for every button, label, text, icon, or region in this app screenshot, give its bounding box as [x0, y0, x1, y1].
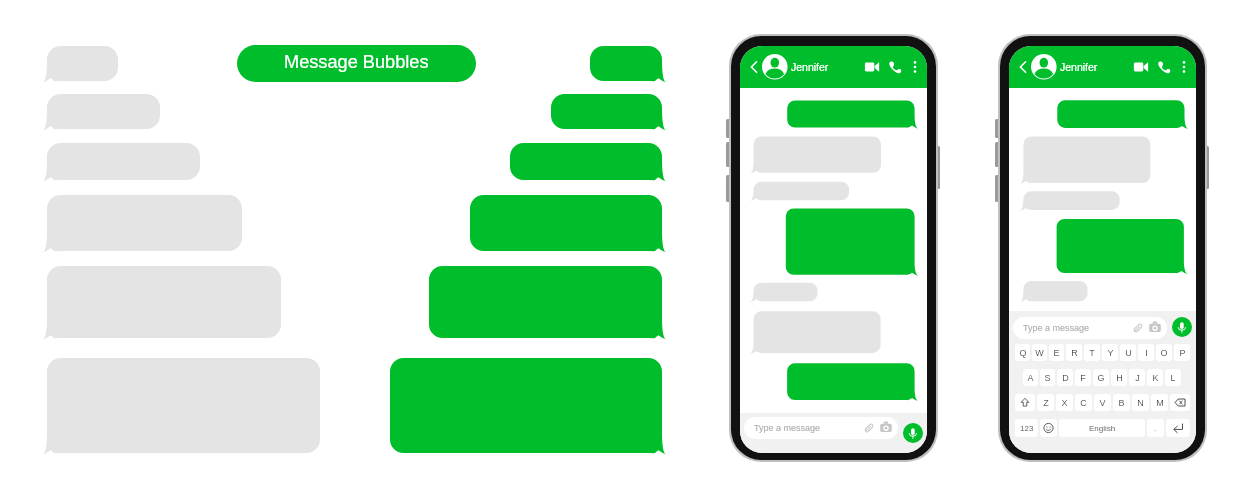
button[interactable]: Back	[1015, 55, 1031, 79]
staticText: M	[1156, 398, 1164, 408]
staticText: Jennifer	[791, 61, 829, 73]
button[interactable]: L	[1165, 369, 1181, 386]
staticText: Type a message	[754, 423, 821, 433]
button[interactable]: Type a message	[1013, 317, 1167, 339]
button[interactable]: More options	[905, 57, 925, 77]
button[interactable]	[1015, 394, 1035, 411]
button[interactable]: Attach file	[862, 421, 876, 435]
button[interactable]: K	[1147, 369, 1163, 386]
staticText: B	[1118, 398, 1125, 408]
button[interactable]: More options	[1174, 57, 1194, 77]
staticText: Y	[1107, 348, 1114, 358]
button[interactable]	[1166, 419, 1190, 437]
button[interactable]: Voice call	[1154, 57, 1174, 77]
staticText: L	[1170, 373, 1176, 383]
button[interactable]: Z	[1037, 394, 1054, 411]
staticText: .	[1154, 424, 1157, 433]
button[interactable]: D	[1057, 369, 1073, 386]
staticText: T	[1089, 348, 1095, 358]
staticText: I	[1145, 348, 1148, 358]
button[interactable]: G	[1093, 369, 1109, 386]
button[interactable]: U	[1120, 344, 1136, 361]
staticText: Message Bubbles	[284, 52, 429, 72]
staticText: K	[1152, 373, 1159, 383]
button[interactable]: M	[1151, 394, 1168, 411]
staticText: P	[1179, 348, 1186, 358]
staticText: V	[1099, 398, 1106, 408]
button[interactable]: J	[1129, 369, 1145, 386]
staticText: J	[1135, 373, 1140, 383]
button[interactable]: T	[1084, 344, 1100, 361]
staticText: W	[1035, 348, 1044, 358]
staticText: U	[1125, 348, 1132, 358]
button[interactable]: X	[1056, 394, 1073, 411]
button[interactable]: Contact avatar	[1031, 54, 1057, 80]
button[interactable]: Voice call	[885, 57, 905, 77]
button[interactable]: Record voice message	[1172, 317, 1192, 337]
staticText: X	[1061, 398, 1068, 408]
button[interactable]: Video call	[1131, 57, 1151, 77]
staticText: Jennifer	[1060, 61, 1098, 73]
button[interactable]	[1170, 394, 1190, 411]
button[interactable]: Camera	[879, 421, 893, 435]
button[interactable]: 123	[1015, 419, 1038, 437]
staticText: Q	[1019, 348, 1027, 358]
staticText: D	[1062, 373, 1069, 383]
button[interactable]: H	[1111, 369, 1127, 386]
button[interactable]: S	[1040, 369, 1055, 386]
button[interactable]: English	[1059, 419, 1145, 437]
staticText: H	[1116, 373, 1123, 383]
button[interactable]: Camera	[1148, 321, 1162, 335]
staticText: O	[1160, 348, 1168, 358]
staticText: G	[1097, 373, 1105, 383]
button[interactable]: P	[1174, 344, 1190, 361]
button[interactable]: Record voice message	[903, 423, 923, 443]
staticText: E	[1053, 348, 1060, 358]
staticText: 123	[1020, 424, 1034, 433]
button[interactable]: I	[1138, 344, 1154, 361]
staticText: English	[1089, 424, 1116, 433]
staticText: A	[1027, 373, 1034, 383]
button[interactable]: O	[1156, 344, 1172, 361]
staticText: Z	[1043, 398, 1049, 408]
button[interactable]: W	[1032, 344, 1047, 361]
button[interactable]: Video call	[862, 57, 882, 77]
staticText: F	[1080, 373, 1086, 383]
staticText: S	[1044, 373, 1051, 383]
button[interactable]: .	[1147, 419, 1164, 437]
button[interactable]: Message Bubbles	[237, 45, 476, 82]
button[interactable]: V	[1094, 394, 1111, 411]
button[interactable]	[1040, 419, 1057, 437]
button[interactable]: R	[1066, 344, 1082, 361]
button[interactable]: A	[1023, 369, 1038, 386]
staticText: R	[1071, 348, 1078, 358]
button[interactable]: E	[1049, 344, 1064, 361]
button[interactable]: Contact avatar	[762, 54, 788, 80]
button[interactable]: C	[1075, 394, 1092, 411]
button[interactable]: Attach file	[1131, 321, 1145, 335]
staticText: N	[1137, 398, 1144, 408]
button[interactable]: Q	[1015, 344, 1030, 361]
staticText: C	[1080, 398, 1087, 408]
button[interactable]: F	[1075, 369, 1091, 386]
button[interactable]: Back	[746, 55, 762, 79]
button[interactable]: B	[1113, 394, 1130, 411]
staticText: Type a message	[1023, 323, 1090, 333]
button[interactable]: N	[1132, 394, 1149, 411]
button[interactable]: Type a message	[744, 417, 898, 439]
button[interactable]: Y	[1102, 344, 1118, 361]
